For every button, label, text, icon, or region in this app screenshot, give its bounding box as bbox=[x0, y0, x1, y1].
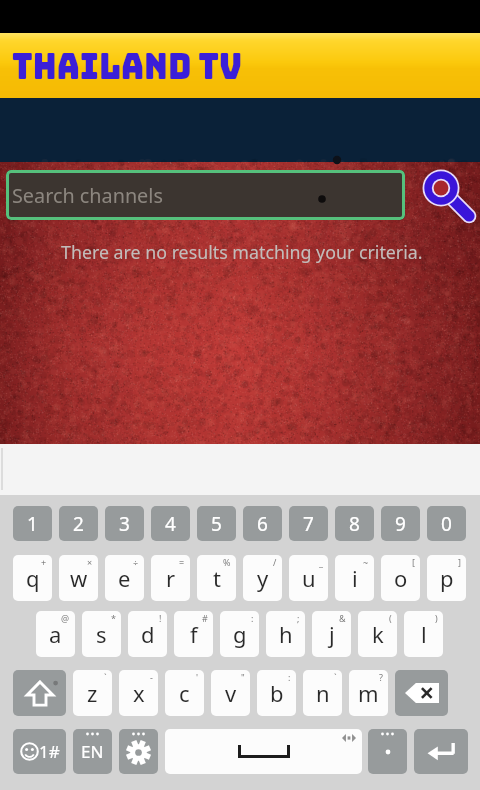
staticText: 6 bbox=[257, 511, 268, 537]
button[interactable]: l bbox=[404, 611, 443, 657]
staticText: ~ bbox=[363, 556, 369, 568]
button[interactable]: Shift bbox=[13, 670, 66, 716]
staticText: / bbox=[273, 556, 277, 568]
staticText: : bbox=[251, 612, 254, 624]
staticText: x bbox=[133, 678, 145, 708]
button[interactable]: g bbox=[220, 611, 259, 657]
staticText: r bbox=[166, 563, 176, 593]
button[interactable]: Symbols bbox=[13, 729, 66, 774]
staticText: Search channels bbox=[12, 182, 163, 209]
staticText: 5 bbox=[211, 511, 222, 537]
button[interactable]: m bbox=[349, 670, 388, 716]
staticText: p bbox=[440, 563, 454, 593]
staticText: # bbox=[202, 612, 208, 624]
staticText: k bbox=[372, 619, 384, 649]
button[interactable]: j bbox=[312, 611, 351, 657]
button[interactable]: p bbox=[427, 555, 466, 601]
button[interactable]: h bbox=[266, 611, 305, 657]
staticText: ` bbox=[334, 671, 337, 683]
button[interactable]: 6 bbox=[243, 506, 282, 541]
staticText: ÷ bbox=[133, 556, 139, 568]
staticText: @ bbox=[61, 612, 70, 624]
staticText: i bbox=[352, 563, 358, 593]
button[interactable]: w bbox=[59, 555, 98, 601]
button[interactable]: d bbox=[128, 611, 167, 657]
button[interactable]: 9 bbox=[381, 506, 420, 541]
button[interactable]: s bbox=[82, 611, 121, 657]
staticText: b bbox=[270, 678, 284, 708]
staticText: 9 bbox=[395, 511, 406, 537]
staticText: + bbox=[41, 556, 47, 568]
staticText: THAILAND TV bbox=[12, 41, 243, 90]
staticText: 4 bbox=[165, 511, 176, 537]
button[interactable]: z bbox=[73, 670, 112, 716]
button[interactable]: 7 bbox=[289, 506, 328, 541]
staticText: _ bbox=[319, 556, 323, 568]
staticText: 8 bbox=[349, 511, 360, 537]
staticText: n bbox=[316, 678, 330, 708]
staticText: d bbox=[141, 619, 155, 649]
button[interactable]: q bbox=[13, 555, 52, 601]
staticText: ] bbox=[458, 556, 461, 568]
staticText: ' bbox=[196, 671, 199, 683]
staticText: = bbox=[179, 556, 185, 568]
button[interactable]: b bbox=[257, 670, 296, 716]
staticText: y bbox=[257, 563, 269, 593]
button[interactable]: r bbox=[151, 555, 190, 601]
staticText: ; bbox=[297, 612, 300, 624]
button[interactable]: Enter bbox=[414, 729, 468, 774]
staticText: e bbox=[118, 563, 131, 593]
staticText: u bbox=[302, 563, 316, 593]
staticText: 1# bbox=[39, 740, 60, 763]
button[interactable]: x bbox=[119, 670, 158, 716]
button[interactable]: 4 bbox=[151, 506, 190, 541]
button[interactable]: 1 bbox=[13, 506, 52, 541]
button[interactable]: Backspace bbox=[395, 670, 448, 716]
staticText: ` bbox=[104, 671, 107, 683]
staticText: 0 bbox=[441, 511, 452, 537]
button[interactable]: Space bbox=[165, 729, 362, 774]
staticText: : bbox=[288, 671, 291, 683]
staticText: o bbox=[394, 563, 408, 593]
button[interactable]: n bbox=[303, 670, 342, 716]
staticText: - bbox=[150, 671, 153, 683]
staticText: 1 bbox=[27, 511, 38, 537]
staticText: ! bbox=[159, 612, 162, 624]
button[interactable]: y bbox=[243, 555, 282, 601]
button[interactable]: i bbox=[335, 555, 374, 601]
button[interactable]: 5 bbox=[197, 506, 236, 541]
button[interactable]: 0 bbox=[427, 506, 466, 541]
button[interactable] bbox=[368, 729, 407, 774]
staticText: m bbox=[358, 678, 379, 708]
staticText: z bbox=[87, 678, 98, 708]
staticText: q bbox=[26, 563, 40, 593]
button[interactable]: u bbox=[289, 555, 328, 601]
staticText: s bbox=[96, 619, 107, 649]
button[interactable]: c bbox=[165, 670, 204, 716]
button[interactable]: f bbox=[174, 611, 213, 657]
button[interactable]: v bbox=[211, 670, 250, 716]
staticText: 7 bbox=[303, 511, 314, 537]
staticText: ? bbox=[379, 671, 383, 683]
staticText: 3 bbox=[119, 511, 130, 537]
button[interactable]: k bbox=[358, 611, 397, 657]
staticText: j bbox=[329, 619, 335, 649]
staticText: h bbox=[279, 619, 293, 649]
button[interactable]: a bbox=[36, 611, 75, 657]
button[interactable]: e bbox=[105, 555, 144, 601]
button[interactable]: 2 bbox=[59, 506, 98, 541]
staticText: l bbox=[421, 619, 427, 649]
staticText: & bbox=[339, 612, 346, 624]
staticText: ) bbox=[435, 612, 438, 624]
button[interactable]: o bbox=[381, 555, 420, 601]
button[interactable]: Search bbox=[416, 164, 478, 226]
button[interactable]: EN bbox=[73, 729, 112, 774]
button[interactable]: Search channels bbox=[6, 170, 405, 220]
button[interactable]: 3 bbox=[105, 506, 144, 541]
staticText: v bbox=[225, 678, 237, 708]
button[interactable]: Settings bbox=[119, 729, 158, 774]
staticText: × bbox=[87, 556, 93, 568]
button[interactable]: t bbox=[197, 555, 236, 601]
staticText: w bbox=[70, 563, 88, 593]
button[interactable]: 8 bbox=[335, 506, 374, 541]
